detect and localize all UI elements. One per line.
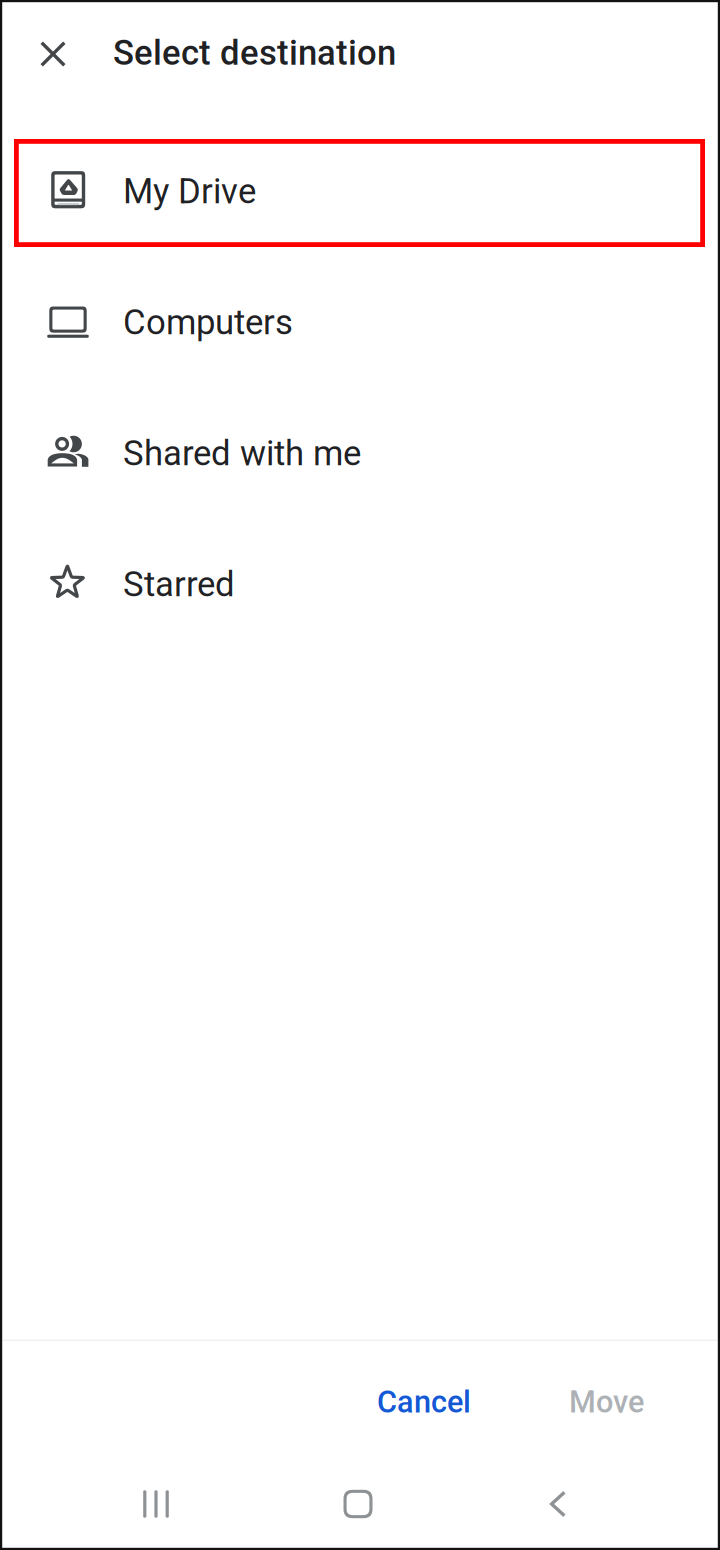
button[interactable]: Recent apps xyxy=(0,1438,312,1550)
staticText: My Drive xyxy=(123,171,256,212)
staticText: Computers xyxy=(123,302,293,343)
staticText: Move xyxy=(569,1384,644,1420)
staticText: Cancel xyxy=(377,1384,471,1420)
button[interactable]: Back xyxy=(404,1438,720,1550)
staticText: Shared with me xyxy=(123,433,361,474)
staticText: Starred xyxy=(123,564,235,605)
button[interactable]: My Drive xyxy=(0,126,720,257)
button[interactable]: Shared with me xyxy=(0,388,720,519)
button[interactable]: Move xyxy=(541,1366,672,1438)
button[interactable]: Starred xyxy=(0,519,720,650)
button[interactable]: Cancel xyxy=(349,1366,499,1438)
button[interactable]: Computers xyxy=(0,257,720,388)
button[interactable]: Home xyxy=(312,1438,404,1550)
button[interactable]: Close xyxy=(21,0,85,108)
staticText: Select destination xyxy=(113,33,396,73)
